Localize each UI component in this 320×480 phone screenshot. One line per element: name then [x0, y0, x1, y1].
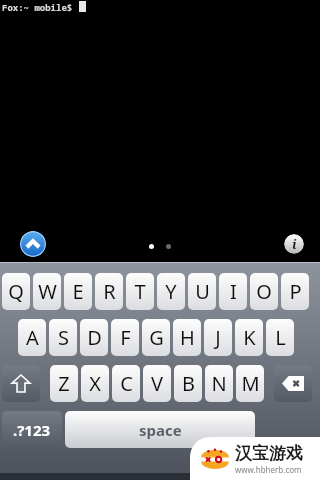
- staticText: W: [38, 278, 57, 305]
- staticText: Fox:~ mobile$: [2, 1, 78, 13]
- button[interactable]: U: [188, 273, 216, 310]
- button[interactable]: H: [173, 319, 201, 356]
- staticText: Z: [58, 370, 70, 397]
- staticText: Y: [165, 278, 177, 305]
- staticText: V: [151, 370, 163, 397]
- button[interactable]: K: [235, 319, 263, 356]
- staticText: O: [256, 278, 272, 305]
- button[interactable]: Info: [284, 234, 304, 254]
- button[interactable]: N: [205, 365, 233, 402]
- staticText: .?123: [13, 420, 51, 440]
- button[interactable]: space: [65, 411, 255, 448]
- staticText: K: [243, 324, 256, 351]
- staticText: A: [26, 324, 39, 351]
- staticText: S: [58, 324, 69, 351]
- button[interactable]: G: [142, 319, 170, 356]
- staticText: G: [149, 324, 164, 351]
- staticText: B: [182, 370, 195, 397]
- staticText: F: [120, 324, 131, 351]
- staticText: H: [180, 324, 195, 351]
- staticText: N: [211, 370, 227, 397]
- staticText: L: [275, 324, 286, 351]
- staticText: T: [134, 278, 146, 305]
- button[interactable]: Backspace: [274, 365, 312, 402]
- staticText: M: [241, 370, 260, 397]
- staticText: R: [103, 278, 116, 305]
- button[interactable]: A: [18, 319, 46, 356]
- staticText: J: [215, 324, 221, 351]
- staticText: I: [230, 278, 237, 305]
- staticText: U: [195, 278, 210, 305]
- staticText: space: [139, 420, 182, 440]
- staticText: www.hbherb.com: [235, 464, 302, 475]
- button[interactable]: V: [143, 365, 171, 402]
- button[interactable]: R: [95, 273, 123, 310]
- staticText: 汉宝游戏: [235, 443, 303, 464]
- button[interactable]: C: [112, 365, 140, 402]
- button[interactable]: W: [33, 273, 61, 310]
- staticText: C: [120, 370, 133, 397]
- button[interactable]: X: [81, 365, 109, 402]
- button[interactable]: D: [80, 319, 108, 356]
- button[interactable]: E: [64, 273, 92, 310]
- button[interactable]: F: [111, 319, 139, 356]
- button[interactable]: O: [250, 273, 278, 310]
- button[interactable]: Q: [2, 273, 30, 310]
- staticText: X: [89, 370, 101, 397]
- button[interactable]: T: [126, 273, 154, 310]
- button[interactable]: L: [266, 319, 294, 356]
- button[interactable]: I: [219, 273, 247, 310]
- button[interactable]: S: [49, 319, 77, 356]
- staticText: i: [292, 235, 297, 253]
- button[interactable]: Z: [50, 365, 78, 402]
- button[interactable]: Y: [157, 273, 185, 310]
- button[interactable]: Shift: [2, 365, 40, 402]
- button[interactable]: B: [174, 365, 202, 402]
- button[interactable]: J: [204, 319, 232, 356]
- button[interactable]: P: [281, 273, 309, 310]
- staticText: Q: [8, 278, 24, 305]
- button[interactable]: M: [236, 365, 264, 402]
- staticText: P: [289, 278, 302, 305]
- staticText: D: [87, 324, 102, 351]
- button[interactable]: Scroll up: [20, 231, 46, 257]
- staticText: E: [72, 278, 84, 305]
- button[interactable]: .?123: [2, 411, 62, 448]
